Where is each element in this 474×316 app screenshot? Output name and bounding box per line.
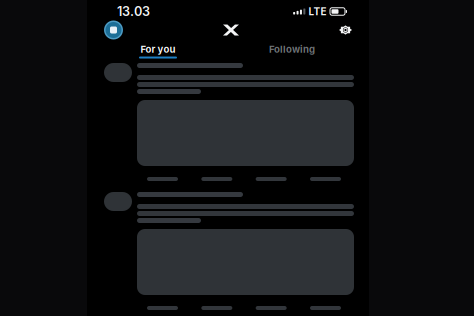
staticText: Following xyxy=(269,43,315,55)
button[interactable]: Settings xyxy=(339,25,352,35)
button[interactable]: Account xyxy=(104,20,123,39)
button[interactable]: Following xyxy=(225,44,359,58)
staticText: 13.03 xyxy=(117,4,150,19)
staticText: For you xyxy=(140,43,175,55)
button[interactable]: Home xyxy=(223,24,239,35)
button[interactable]: For you xyxy=(91,44,225,58)
staticText: LTE xyxy=(308,5,326,18)
